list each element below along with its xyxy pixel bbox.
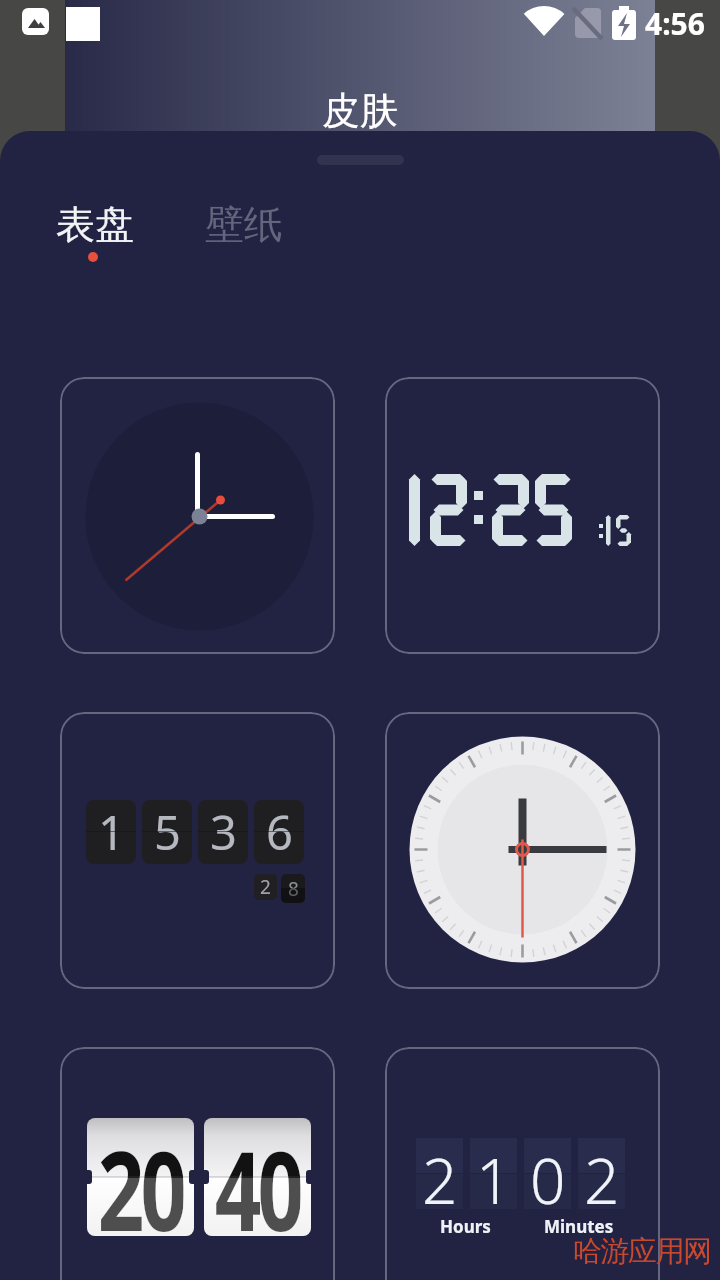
staticText: 皮肤: [322, 87, 398, 135]
button[interactable]: [385, 377, 660, 654]
staticText: 哈游应用网: [573, 1233, 711, 1270]
staticText: 6: [266, 800, 293, 864]
staticText: 2: [584, 1138, 620, 1209]
staticText: 1: [98, 800, 125, 864]
button[interactable]: [60, 377, 335, 654]
staticText: 20: [98, 1118, 183, 1236]
staticText: 0: [530, 1138, 566, 1209]
staticText: 8: [288, 876, 299, 902]
button[interactable]: 1: [60, 712, 335, 989]
staticText: 1: [476, 1138, 512, 1209]
staticText: Minutes: [544, 1215, 614, 1235]
button[interactable]: 20: [60, 1047, 335, 1280]
button[interactable]: [385, 712, 660, 989]
staticText: 5: [154, 800, 181, 864]
staticText: 40: [215, 1118, 300, 1236]
staticText: 表盘: [56, 200, 134, 249]
button[interactable]: 壁纸: [205, 200, 283, 249]
staticText: 壁纸: [205, 200, 283, 249]
button[interactable]: 表盘: [56, 200, 134, 249]
button[interactable]: 2: [385, 1047, 660, 1280]
staticText: 3: [210, 800, 237, 864]
staticText: 2: [260, 874, 271, 900]
staticText: 4:56: [645, 3, 705, 44]
staticText: 2: [422, 1138, 458, 1209]
staticText: Hours: [440, 1215, 491, 1235]
